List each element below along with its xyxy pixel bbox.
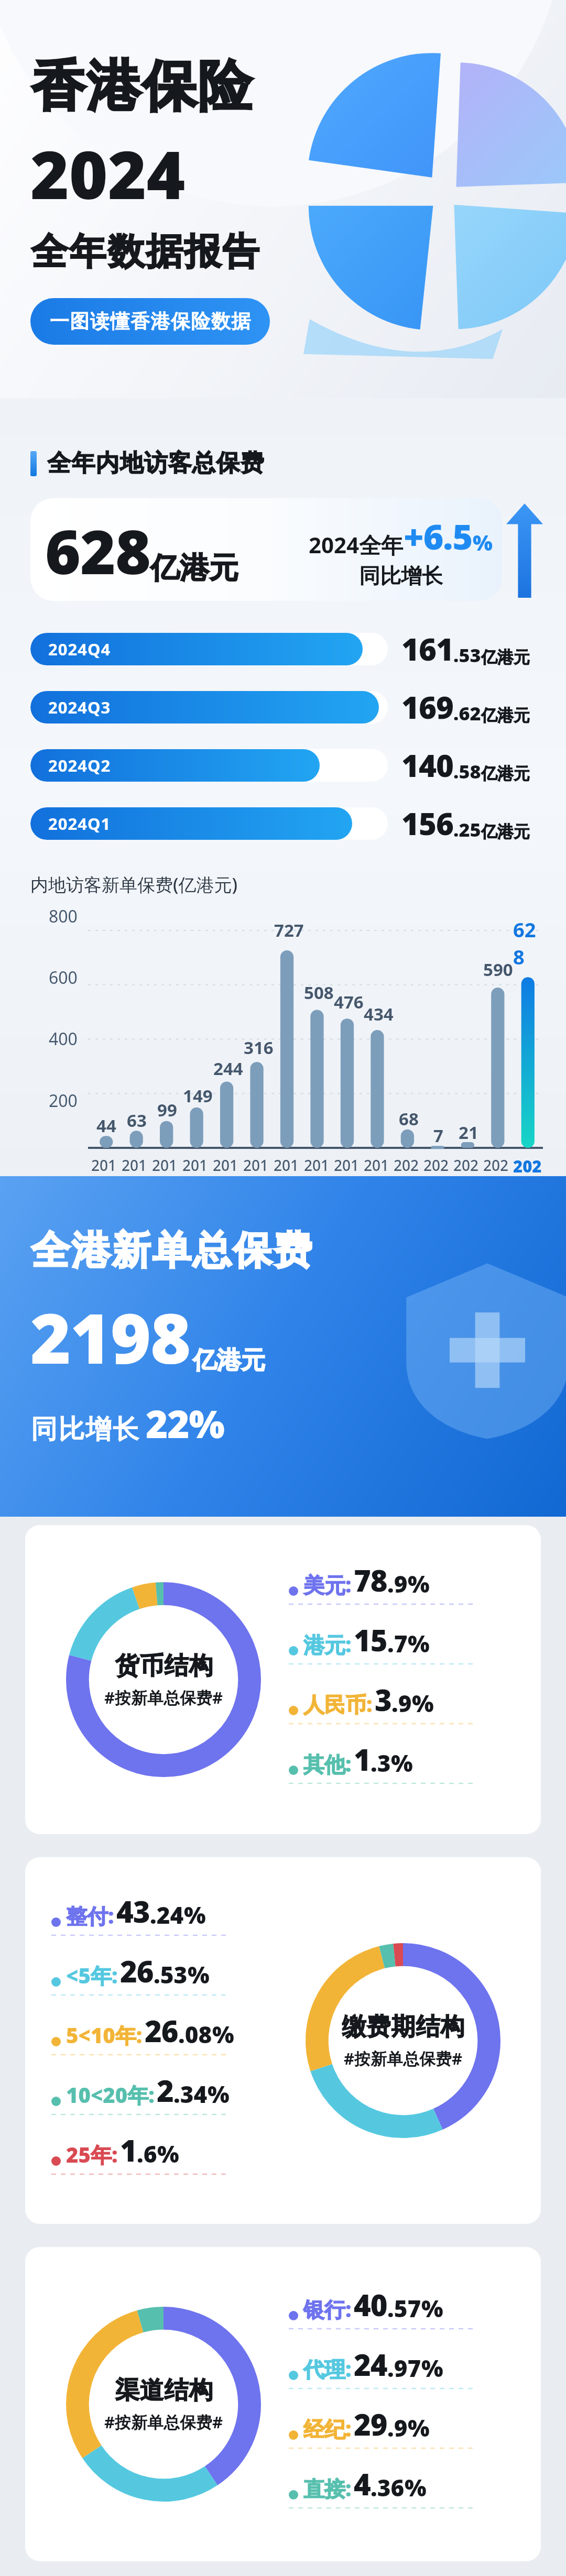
staticText: .36: [371, 2472, 405, 2503]
staticText: 2014: [213, 1155, 243, 1176]
staticText: .6: [137, 2138, 157, 2169]
staticText: 434: [364, 1002, 394, 1026]
button[interactable]: 港元:: [289, 1620, 528, 1660]
staticText: 港元:: [303, 1630, 352, 1659]
button[interactable]: 整付:: [25, 1857, 541, 2224]
staticText: 经纪:: [303, 2414, 352, 2443]
staticText: 628: [513, 916, 543, 970]
staticText: 2024Q3: [48, 696, 111, 718]
button[interactable]: 整付:: [51, 1891, 277, 1931]
staticText: 亿港元: [481, 647, 530, 667]
button[interactable]: 直接:: [289, 2464, 528, 2504]
button[interactable]: 银行:: [289, 2285, 528, 2325]
staticText: 400: [49, 1027, 78, 1050]
staticText: 149: [183, 1084, 213, 1108]
button[interactable]: 人民币:: [289, 1680, 528, 1719]
button[interactable]: 10<20年:: [51, 2070, 277, 2110]
staticText: 26: [120, 1951, 154, 1991]
staticText: 2198: [30, 1290, 191, 1384]
staticText: 渠道结构: [115, 2375, 213, 2406]
staticText: 43: [116, 1891, 150, 1931]
staticText: 人民币:: [303, 1690, 373, 1718]
staticText: 2023: [483, 1155, 513, 1176]
staticText: 24: [354, 2344, 387, 2384]
staticText: 美元:: [303, 1570, 352, 1599]
staticText: 25年:: [66, 2140, 118, 2169]
staticText: %: [188, 1959, 210, 1990]
button[interactable]: <5年:: [51, 1951, 277, 1991]
staticText: 2018: [334, 1155, 364, 1176]
staticText: 3: [375, 1680, 391, 1719]
staticText: 亿港元: [481, 705, 530, 726]
button[interactable]: 2024Q1: [30, 803, 543, 844]
staticText: %: [473, 528, 493, 556]
staticText: 亿港元: [481, 821, 530, 842]
staticText: 156: [401, 803, 453, 844]
staticText: 628: [45, 509, 150, 592]
staticText: 亿港元: [150, 550, 238, 587]
staticText: .53: [154, 1959, 188, 1990]
staticText: 1: [354, 1739, 371, 1779]
staticText: 40: [354, 2285, 387, 2325]
staticText: 2024Q1: [48, 813, 111, 835]
button[interactable]: 一图读懂香港保险数据: [30, 298, 270, 345]
staticText: 169: [401, 686, 453, 728]
staticText: .53: [453, 642, 481, 668]
staticText: 2024Q4: [48, 638, 111, 660]
staticText: 2024Q2: [48, 754, 111, 776]
staticText: %: [208, 2078, 230, 2110]
button[interactable]: 货币结构: [25, 1525, 541, 1834]
staticText: 21: [459, 1121, 478, 1144]
staticText: 全年内地访客总保费: [47, 448, 264, 478]
button[interactable]: 其他:: [289, 1739, 528, 1779]
staticText: 15: [354, 1620, 387, 1660]
button[interactable]: 渠道结构: [25, 2247, 541, 2561]
staticText: 同比增长: [30, 1413, 139, 1446]
staticText: <5年:: [66, 1961, 118, 1990]
button[interactable]: 2024Q2: [30, 744, 543, 786]
staticText: 代理:: [303, 2354, 352, 2383]
staticText: 10<20年:: [66, 2080, 155, 2109]
staticText: 一图读懂香港保险数据: [49, 309, 251, 334]
staticText: 2015: [243, 1155, 274, 1176]
staticText: 1: [120, 2130, 137, 2170]
staticText: 整付:: [66, 1901, 114, 1930]
staticText: 4: [354, 2464, 371, 2504]
staticText: 2021: [423, 1155, 453, 1176]
button[interactable]: 经纪:: [289, 2404, 528, 2444]
staticText: %: [421, 2352, 443, 2384]
staticText: 63: [127, 1109, 147, 1132]
staticText: .7: [387, 1628, 408, 1659]
staticText: .97: [387, 2352, 421, 2384]
staticText: 2020: [394, 1155, 423, 1176]
staticText: 香港保险: [30, 52, 253, 121]
staticText: .9: [387, 1568, 408, 1599]
staticText: .25: [453, 817, 481, 842]
staticText: 其他:: [303, 1749, 352, 1778]
staticText: %: [157, 2138, 179, 2169]
staticText: %: [212, 2019, 234, 2050]
staticText: 2010: [91, 1155, 122, 1176]
button[interactable]: 美元:: [289, 1560, 528, 1600]
staticText: %: [421, 2293, 443, 2324]
staticText: %: [405, 2472, 427, 2503]
staticText: 全港新单总保费: [30, 1226, 313, 1275]
button[interactable]: 代理:: [289, 2344, 528, 2384]
staticText: 2012: [152, 1155, 182, 1176]
staticText: %: [408, 1628, 430, 1659]
staticText: 727: [274, 918, 304, 942]
button[interactable]: 5<10年:: [51, 2011, 277, 2051]
staticText: 2022: [453, 1155, 483, 1176]
staticText: 5<10年:: [66, 2021, 143, 2049]
staticText: .34: [173, 2078, 208, 2110]
staticText: 200: [49, 1089, 78, 1112]
staticText: .62: [453, 700, 481, 726]
staticText: 140: [401, 744, 453, 786]
staticText: 2017: [304, 1155, 334, 1176]
button[interactable]: 25年:: [51, 2130, 277, 2170]
button[interactable]: 2024Q4: [30, 628, 543, 670]
staticText: %: [184, 1899, 206, 1931]
staticText: 2: [157, 2070, 173, 2110]
button[interactable]: 2024Q3: [30, 686, 543, 728]
staticText: 直接:: [303, 2474, 352, 2503]
